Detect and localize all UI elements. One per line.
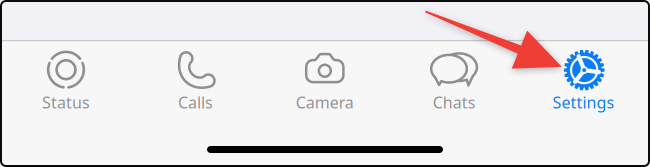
staticText: Camera [296, 92, 354, 113]
button[interactable]: Status [1, 41, 131, 113]
button[interactable]: Settings [519, 41, 648, 113]
staticText: Calls [178, 92, 213, 113]
button[interactable]: Chats [389, 41, 519, 113]
button[interactable]: Calls [131, 41, 260, 113]
staticText: Status [42, 92, 90, 113]
button[interactable]: Camera [260, 41, 389, 113]
staticText: Settings [553, 92, 615, 113]
staticText: Chats [433, 92, 476, 113]
